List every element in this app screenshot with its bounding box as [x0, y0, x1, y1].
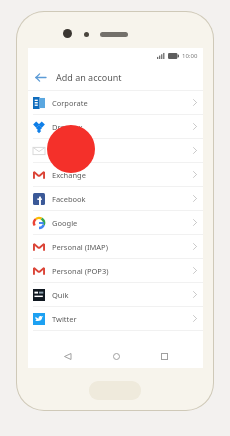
button[interactable]: Back	[28, 65, 52, 89]
staticText: Personal (POP3)	[52, 266, 109, 276]
staticText: Dropbox	[52, 122, 83, 132]
button[interactable]: Home	[106, 346, 126, 366]
staticText: Twitter	[52, 314, 77, 324]
button[interactable]: Dropbox	[28, 115, 203, 139]
button[interactable]: Exchange	[28, 163, 203, 187]
button[interactable]: Quik	[28, 283, 203, 307]
button[interactable]: Email	[28, 139, 203, 163]
button[interactable]: Corporate	[28, 91, 203, 115]
button[interactable]: Google	[28, 211, 203, 235]
staticText: Facebook	[52, 194, 86, 204]
button[interactable]: Twitter	[28, 307, 203, 331]
button[interactable]: Back	[57, 346, 77, 366]
staticText: 10:00	[182, 52, 198, 60]
button[interactable]: Recent apps	[154, 346, 174, 366]
button[interactable]: Personal (POP3)	[28, 259, 203, 283]
staticText: Add an account	[56, 71, 122, 83]
button[interactable]: Facebook	[28, 187, 203, 211]
staticText: Quik	[52, 290, 69, 300]
button[interactable]: Personal (IMAP)	[28, 235, 203, 259]
staticText: Google	[52, 218, 78, 228]
staticText: Exchange	[52, 170, 86, 180]
staticText: Corporate	[52, 98, 88, 108]
staticText: Personal (IMAP)	[52, 242, 108, 252]
